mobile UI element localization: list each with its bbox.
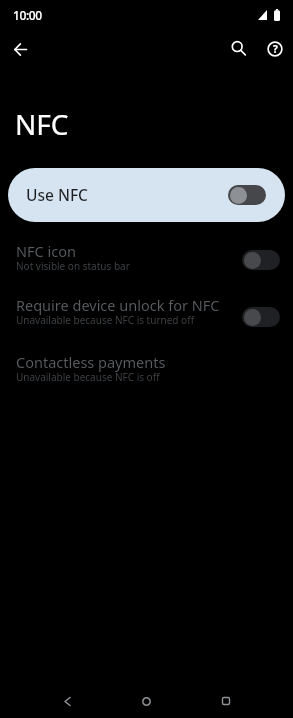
button[interactable]: Contactless payments — [0, 339, 293, 395]
staticText: Contactless payments — [16, 352, 166, 372]
button[interactable] — [242, 307, 280, 327]
button[interactable]: Use NFC — [8, 168, 285, 222]
staticText: Unavailable because NFC is off — [16, 370, 160, 384]
button[interactable] — [242, 250, 280, 270]
staticText: Unavailable because NFC is turned off — [16, 313, 195, 327]
staticText: Not visible on status bar — [16, 259, 130, 273]
button[interactable] — [107, 684, 186, 718]
button[interactable]: Require device unlock for NFC — [0, 282, 293, 339]
button[interactable] — [228, 185, 266, 205]
button[interactable]: NFC icon — [0, 222, 293, 282]
staticText: NFC icon — [16, 241, 76, 261]
button[interactable] — [8, 37, 32, 61]
button[interactable] — [28, 684, 107, 718]
button[interactable] — [227, 37, 251, 61]
button[interactable] — [186, 684, 265, 718]
staticText: NFC — [15, 105, 69, 143]
staticText: Require device unlock for NFC — [16, 295, 220, 315]
staticText: ? — [273, 42, 278, 56]
button[interactable]: ? — [263, 37, 287, 61]
staticText: Use NFC — [26, 184, 88, 205]
staticText: 10:00 — [13, 7, 42, 23]
